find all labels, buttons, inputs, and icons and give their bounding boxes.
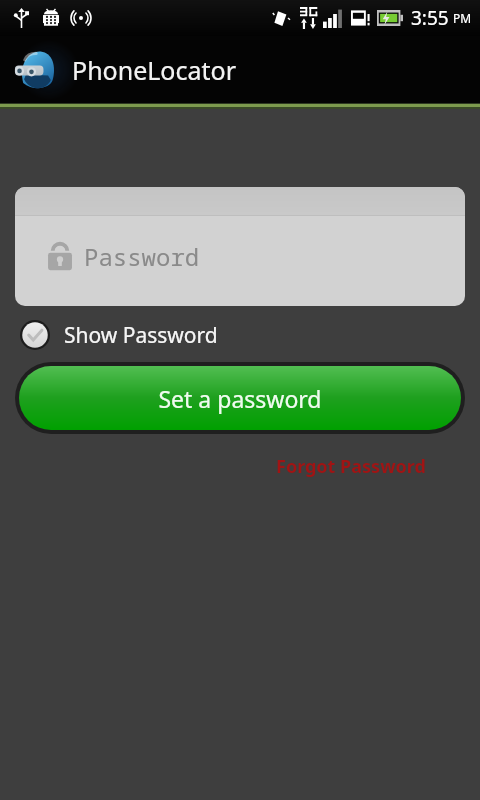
staticText: PM [453,10,472,26]
button[interactable]: Set a password [19,366,461,430]
staticText: Forgot Password [276,454,426,479]
button[interactable]: Password [15,187,465,306]
staticText: Show Password [64,321,218,350]
staticText: Password [84,240,200,273]
staticText: PhoneLocator [72,53,236,87]
button[interactable]: Show Password [20,320,218,350]
button[interactable]: Forgot Password [276,454,426,479]
staticText: 3:55 [411,5,449,31]
staticText: Set a password [158,383,322,414]
